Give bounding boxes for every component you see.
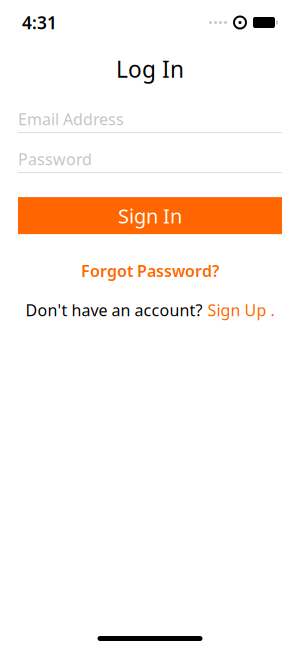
button[interactable]: Sign Up . [207,299,274,321]
button[interactable]: Sign In [18,197,282,234]
staticText: Log In [116,54,184,84]
staticText: Email Address [18,108,124,130]
staticText: Password [18,148,92,170]
button[interactable]: Forgot Password? [73,254,227,287]
staticText: Don't have an account? [25,299,202,321]
staticText: Sign In [118,202,182,229]
staticText: 4:31 [22,11,57,34]
staticText: Forgot Password? [81,260,219,281]
staticText: Sign Up . [207,299,274,321]
